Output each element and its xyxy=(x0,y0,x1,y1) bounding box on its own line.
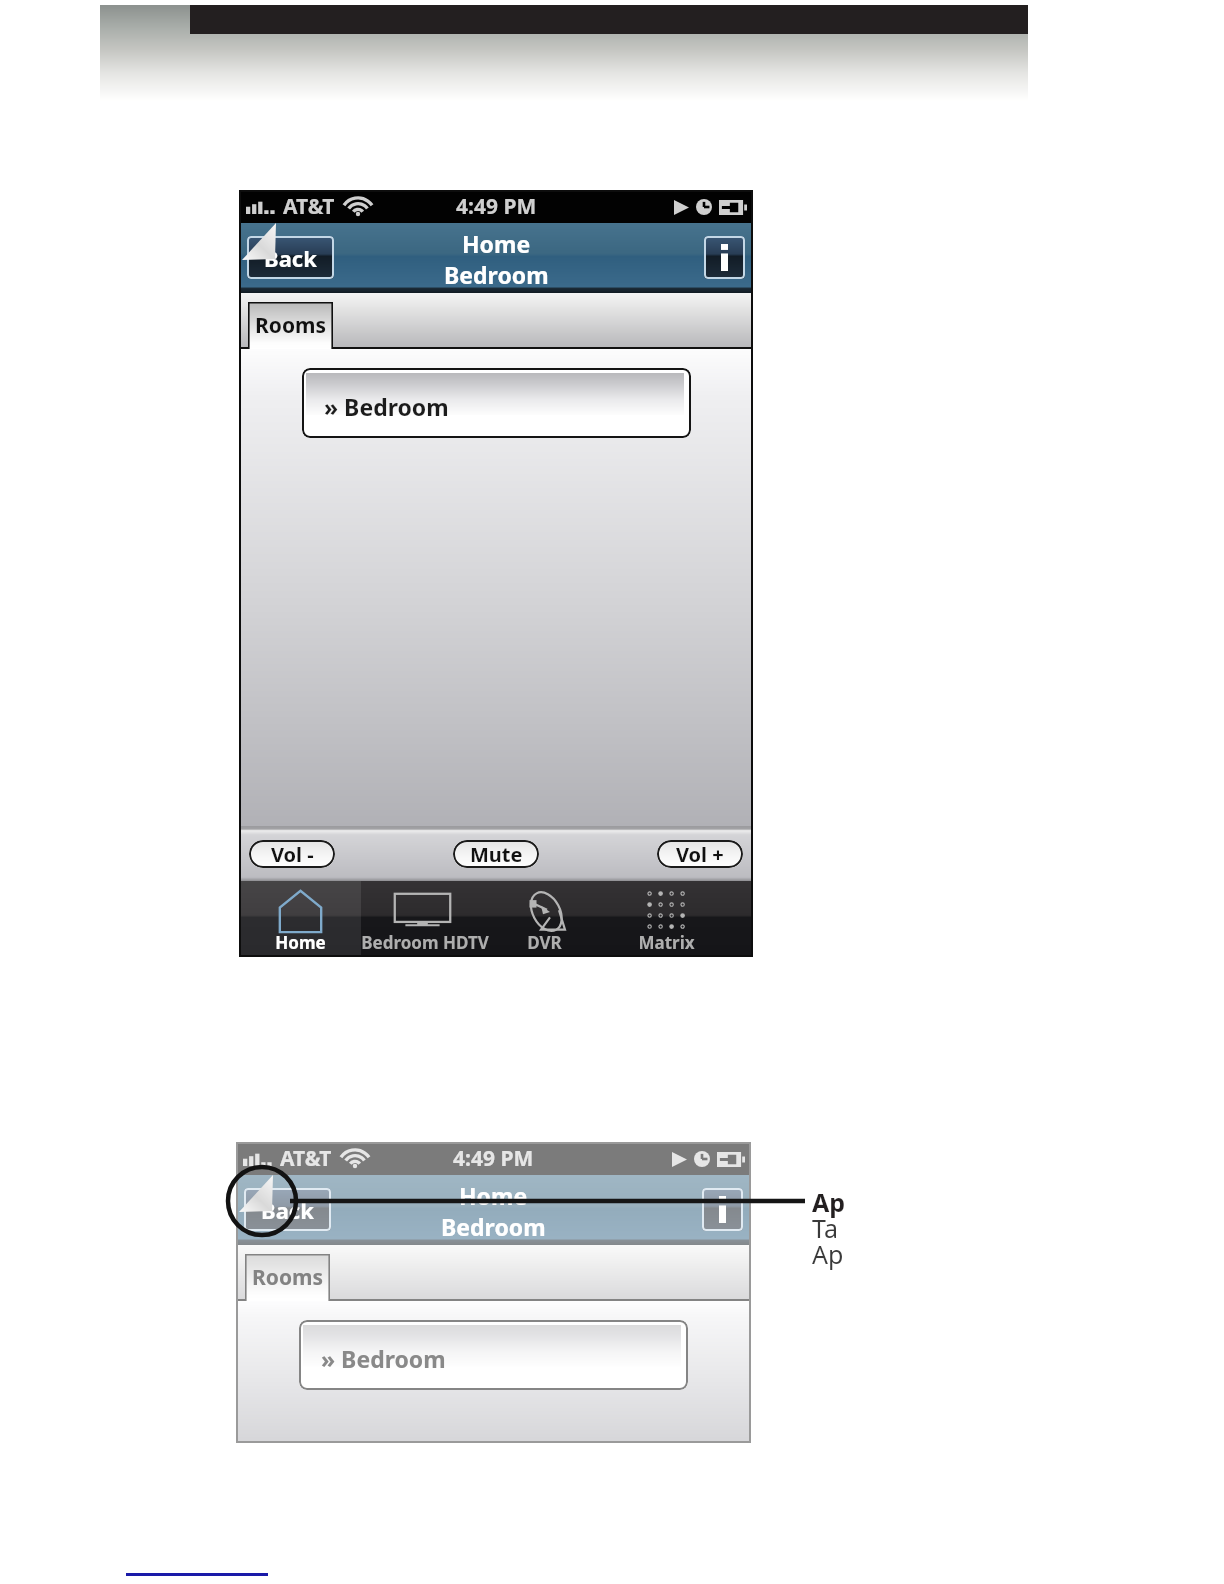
staticText: Mute xyxy=(470,841,523,868)
button[interactable]: » Bedroom xyxy=(299,1320,688,1390)
staticText: » Bedroom xyxy=(324,391,449,422)
staticText: Ta xyxy=(812,1211,838,1245)
button[interactable]: Info xyxy=(704,236,745,279)
staticText: » Bedroom xyxy=(321,1343,446,1374)
button[interactable]: Mute xyxy=(453,840,539,868)
button[interactable]: Bedroom HDTV xyxy=(361,881,483,957)
staticText: Matrix xyxy=(638,931,695,954)
staticText: Ap xyxy=(812,1185,846,1219)
button[interactable]: Vol + xyxy=(657,840,743,868)
staticText: Home xyxy=(462,228,531,259)
staticText: Bedroom xyxy=(441,1211,546,1242)
staticText: 4:49 PM xyxy=(453,1144,534,1173)
staticText: 4:49 PM xyxy=(456,192,537,221)
staticText: DVR xyxy=(527,931,562,954)
button[interactable]: » Bedroom xyxy=(302,368,691,438)
button[interactable]: Home xyxy=(239,881,361,957)
staticText: Back xyxy=(261,1195,314,1225)
staticText: AT&T xyxy=(283,192,335,221)
staticText: Rooms xyxy=(255,311,327,340)
staticText: Vol - xyxy=(271,841,314,868)
button[interactable]: DVR xyxy=(483,881,605,957)
button[interactable]: Vol - xyxy=(249,840,335,868)
staticText: Ap xyxy=(812,1237,844,1271)
staticText: AT&T xyxy=(280,1144,332,1173)
staticText: Vol + xyxy=(676,841,724,868)
staticText: Back xyxy=(264,243,317,273)
staticText: Rooms xyxy=(252,1263,324,1292)
staticText: Home xyxy=(275,931,326,954)
button[interactable]: Back xyxy=(247,236,334,279)
staticText: Home xyxy=(459,1180,528,1211)
button[interactable]: Info xyxy=(702,1188,743,1231)
staticText: Bedroom HDTV xyxy=(361,931,483,954)
button[interactable]: Rooms xyxy=(245,1254,330,1301)
staticText: Bedroom xyxy=(444,259,549,290)
button[interactable]: Matrix xyxy=(605,881,727,957)
button[interactable]: Back xyxy=(244,1188,331,1231)
button[interactable]: Rooms xyxy=(248,302,333,349)
